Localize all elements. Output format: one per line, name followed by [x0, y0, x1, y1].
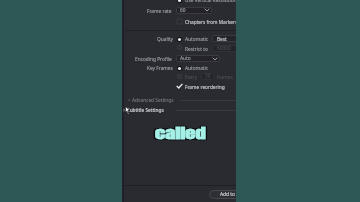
staticText: called — [156, 122, 208, 143]
staticText: called — [155, 123, 207, 144]
staticText: Restrict to — [185, 46, 208, 53]
staticText: Quality — [157, 36, 174, 43]
staticText: Auto — [180, 55, 191, 62]
button[interactable] — [201, 73, 214, 80]
button[interactable]: Radio option — [177, 0, 182, 3]
button[interactable] — [209, 190, 236, 199]
staticText: Automatic — [185, 36, 209, 43]
staticText: Best — [217, 36, 227, 43]
staticText: Encoding Profile — [135, 56, 172, 63]
staticText: Chapters from Markers — [185, 19, 236, 26]
staticText: 60 — [180, 7, 186, 14]
staticText: Add to — [220, 191, 235, 198]
staticText: called — [153, 124, 205, 145]
staticText: frames — [217, 74, 233, 81]
staticText: Subtitle Settings — [127, 107, 164, 114]
staticText: Automatic — [185, 65, 209, 72]
staticText: Advanced Settings — [132, 97, 174, 104]
button[interactable]: Checkbox — [177, 84, 182, 89]
button[interactable]: Radio option — [177, 66, 182, 71]
button[interactable]: Checkbox — [177, 19, 182, 24]
staticText: > — [128, 97, 131, 103]
staticText: > — [123, 107, 126, 113]
button[interactable]: Radio option — [177, 37, 182, 42]
staticText: 60000 — [217, 45, 231, 52]
staticText: Frame reordering — [185, 84, 225, 91]
button[interactable]: Radio option — [177, 74, 182, 79]
staticText: Frame rate — [147, 8, 172, 15]
button[interactable] — [212, 45, 236, 52]
button[interactable] — [212, 35, 236, 42]
button[interactable] — [176, 55, 220, 62]
button[interactable] — [176, 7, 212, 14]
button[interactable]: Radio option — [177, 45, 182, 50]
staticText: Use Vertical Resolution — [185, 0, 236, 4]
staticText: called — [153, 122, 205, 143]
staticText: 30 — [205, 73, 211, 80]
staticText: called — [156, 124, 208, 145]
staticText: Every — [185, 74, 198, 81]
staticText: Key Frames — [147, 65, 173, 72]
